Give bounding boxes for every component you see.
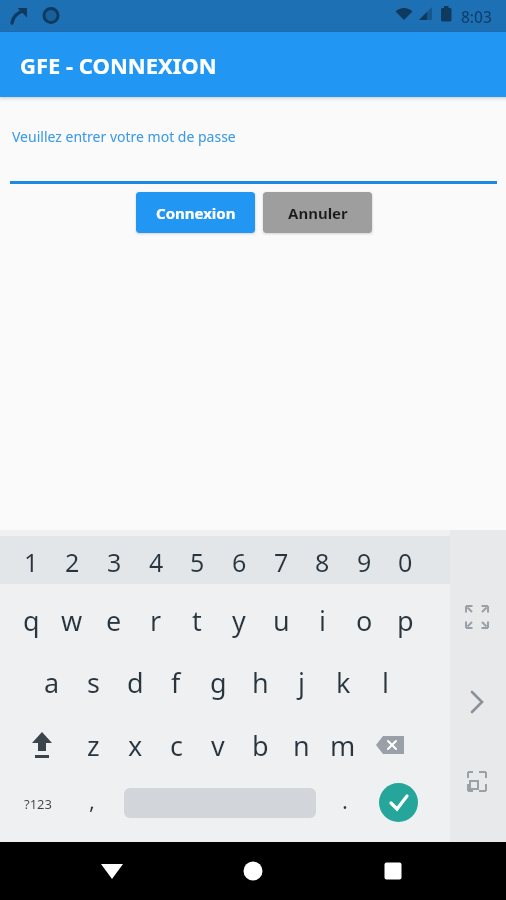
- button[interactable]: s: [72, 656, 114, 708]
- button[interactable]: 8: [301, 536, 343, 588]
- staticText: j: [298, 664, 305, 701]
- button[interactable]: [369, 847, 417, 895]
- staticText: 2: [65, 545, 80, 579]
- staticText: 1: [24, 545, 39, 579]
- staticText: m: [330, 727, 356, 764]
- staticText: a: [44, 664, 60, 701]
- button[interactable]: 2: [51, 536, 93, 588]
- button[interactable]: [459, 599, 495, 635]
- button[interactable]: f: [155, 656, 197, 708]
- button[interactable]: u: [260, 594, 302, 646]
- button[interactable]: j: [280, 656, 322, 708]
- button[interactable]: o: [343, 594, 385, 646]
- button[interactable]: r: [135, 594, 177, 646]
- staticText: .: [342, 785, 348, 815]
- staticText: Veuillez entrer votre mot de passe: [12, 127, 236, 146]
- button[interactable]: [461, 766, 493, 798]
- button[interactable]: p: [384, 594, 426, 646]
- staticText: 8: [315, 545, 330, 579]
- staticText: b: [252, 727, 269, 764]
- button[interactable]: m: [322, 719, 364, 771]
- staticText: c: [170, 727, 183, 764]
- button[interactable]: x: [114, 719, 156, 771]
- button[interactable]: 6: [218, 536, 260, 588]
- button[interactable]: v: [197, 719, 239, 771]
- staticText: 6: [232, 545, 247, 579]
- button[interactable]: 1: [10, 536, 52, 588]
- button[interactable]: 0: [384, 536, 426, 588]
- staticText: d: [127, 664, 144, 701]
- staticText: 4: [149, 545, 164, 579]
- button[interactable]: g: [197, 656, 239, 708]
- button[interactable]: ,: [71, 774, 113, 826]
- button[interactable]: z: [72, 719, 114, 771]
- button[interactable]: Annuler: [263, 192, 372, 233]
- button[interactable]: 5: [176, 536, 218, 588]
- staticText: 8:03: [461, 6, 492, 27]
- button[interactable]: y: [218, 594, 260, 646]
- button[interactable]: 9: [343, 536, 385, 588]
- staticText: 5: [190, 545, 205, 579]
- staticText: p: [397, 602, 414, 639]
- button[interactable]: t: [176, 594, 218, 646]
- staticText: 3: [107, 545, 122, 579]
- button[interactable]: i: [301, 594, 343, 646]
- button[interactable]: w: [51, 594, 93, 646]
- staticText: e: [106, 602, 122, 639]
- button[interactable]: d: [114, 656, 156, 708]
- staticText: g: [210, 664, 227, 701]
- staticText: z: [87, 727, 100, 764]
- button[interactable]: 3: [93, 536, 135, 588]
- button[interactable]: c: [155, 719, 197, 771]
- button[interactable]: n: [280, 719, 322, 771]
- button[interactable]: b: [239, 719, 281, 771]
- button[interactable]: [88, 847, 136, 895]
- staticText: 9: [357, 545, 372, 579]
- staticText: s: [87, 664, 100, 701]
- staticText: u: [273, 602, 290, 639]
- button[interactable]: l: [364, 656, 406, 708]
- button[interactable]: [22, 725, 62, 765]
- button[interactable]: ?123: [14, 780, 62, 828]
- staticText: n: [293, 727, 310, 764]
- staticText: ?123: [24, 795, 52, 813]
- staticText: i: [319, 602, 326, 639]
- button[interactable]: [229, 847, 277, 895]
- staticText: GFE - CONNEXION: [20, 50, 217, 80]
- staticText: w: [61, 602, 83, 639]
- staticText: x: [128, 727, 143, 764]
- staticText: o: [356, 602, 373, 639]
- staticText: l: [382, 664, 389, 701]
- staticText: t: [192, 602, 202, 639]
- staticText: v: [211, 727, 225, 764]
- button[interactable]: [379, 783, 418, 822]
- staticText: ,: [89, 785, 95, 815]
- button[interactable]: .: [324, 774, 366, 826]
- button[interactable]: Connexion: [136, 192, 255, 233]
- staticText: Annuler: [288, 203, 348, 223]
- staticText: q: [23, 602, 40, 639]
- button[interactable]: h: [239, 656, 281, 708]
- staticText: f: [171, 664, 181, 701]
- button[interactable]: [371, 726, 411, 764]
- button[interactable]: 4: [135, 536, 177, 588]
- staticText: Connexion: [156, 203, 236, 223]
- button[interactable]: [461, 686, 493, 718]
- staticText: y: [232, 602, 246, 639]
- staticText: h: [252, 664, 269, 701]
- staticText: k: [336, 664, 351, 701]
- button[interactable]: e: [93, 594, 135, 646]
- button[interactable]: 7: [260, 536, 302, 588]
- staticText: 7: [274, 545, 289, 579]
- button[interactable]: k: [322, 656, 364, 708]
- staticText: 0: [398, 545, 413, 579]
- button[interactable]: q: [10, 594, 52, 646]
- staticText: r: [150, 602, 162, 639]
- button[interactable]: a: [31, 656, 73, 708]
